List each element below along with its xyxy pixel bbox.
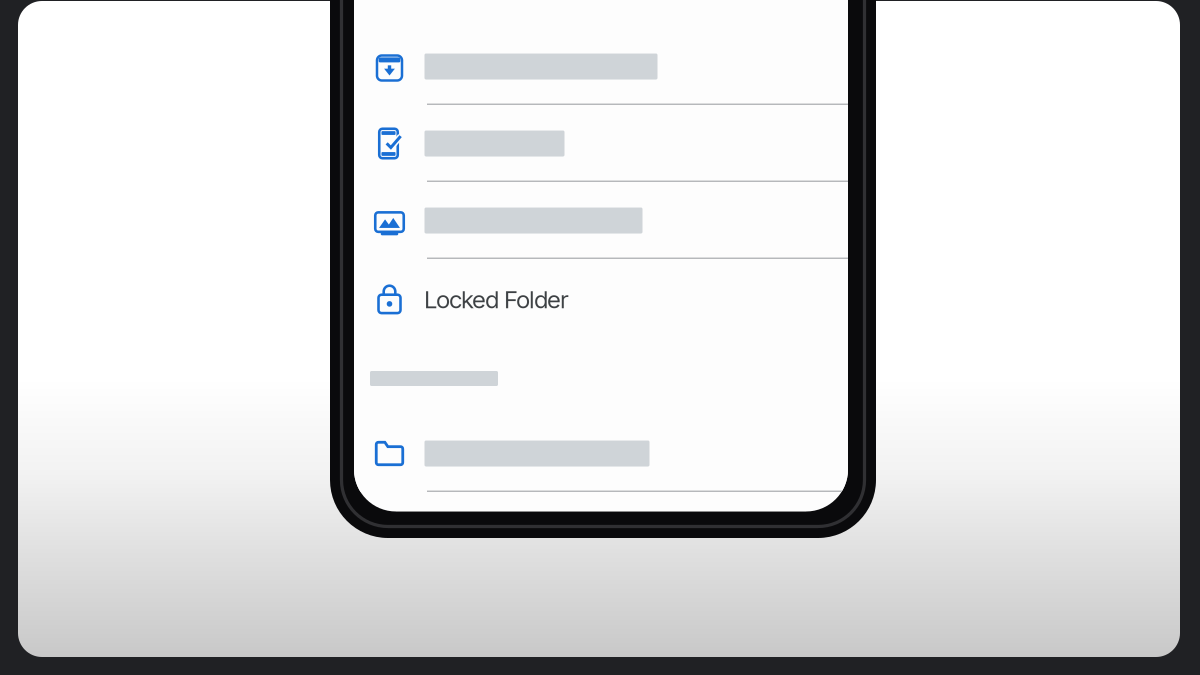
button[interactable]: Photos [354, 182, 848, 259]
button[interactable]: Locked Folder [354, 261, 848, 338]
button[interactable]: Folder [354, 415, 848, 492]
button[interactable]: On this device [354, 105, 848, 182]
button[interactable]: Save to device [354, 28, 848, 105]
staticText: Locked Folder [424, 285, 568, 314]
